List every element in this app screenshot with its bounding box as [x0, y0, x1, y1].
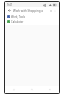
button[interactable]: More options: [53, 9, 57, 13]
button[interactable]: Work, Tools: [5, 14, 59, 19]
staticText: Work, Tools: [11, 15, 26, 19]
staticText: Work with Shopping a: [13, 9, 43, 13]
button[interactable]: Calculator: [5, 19, 59, 24]
button[interactable]: Back: [7, 8, 12, 13]
staticText: Calculator: [11, 20, 24, 24]
button[interactable]: Clear: [49, 9, 53, 13]
staticText: 9:41: [7, 3, 13, 7]
button[interactable]: Work with Shopping a: [13, 9, 49, 13]
